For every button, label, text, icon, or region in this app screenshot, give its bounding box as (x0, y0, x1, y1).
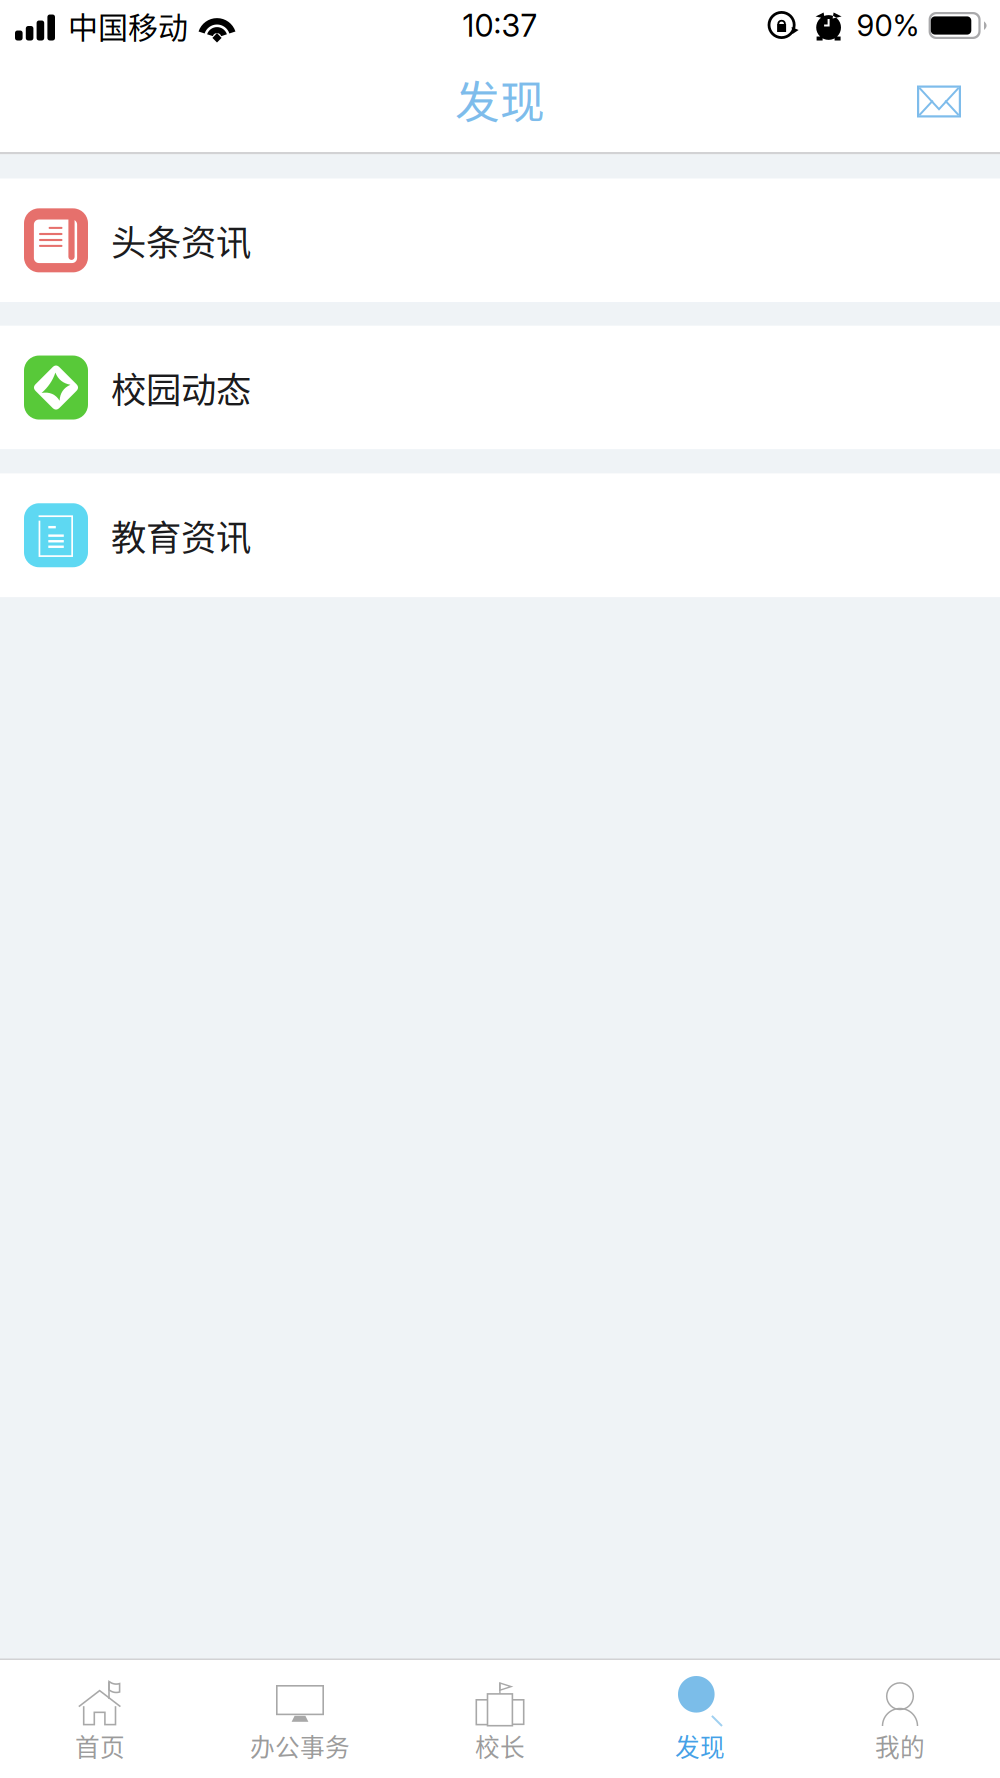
staticText: 10:37 (462, 7, 537, 44)
staticText: 我的 (875, 1728, 925, 1764)
button[interactable]: 校长 (400, 1660, 600, 1778)
staticText: 办公事务 (250, 1728, 350, 1764)
button[interactable]: Messages (901, 61, 977, 141)
button[interactable]: 头条资讯 (0, 178, 1000, 302)
button[interactable]: 首页 (0, 1660, 200, 1778)
staticText: 教育资讯 (111, 510, 251, 561)
staticText: 校长 (475, 1728, 525, 1764)
staticText: 校园动态 (111, 362, 251, 413)
button[interactable]: 校园动态 (0, 326, 1000, 449)
button[interactable]: 办公事务 (200, 1660, 400, 1778)
button[interactable]: 发现 (600, 1660, 800, 1778)
staticText: 发现 (455, 67, 545, 131)
staticText: 发现 (675, 1728, 725, 1764)
button[interactable]: 教育资讯 (0, 473, 1000, 597)
staticText: 90% (857, 8, 920, 43)
button[interactable]: 我的 (800, 1660, 1000, 1778)
staticText: 中国移动 (68, 4, 188, 47)
staticText: 头条资讯 (111, 215, 251, 266)
staticText: 首页 (75, 1728, 125, 1764)
